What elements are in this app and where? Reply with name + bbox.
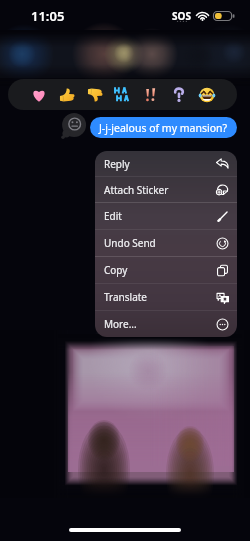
- staticText: Copy: [104, 263, 216, 277]
- button[interactable]: Love: [29, 85, 48, 104]
- button[interactable]: Reply: [95, 151, 237, 176]
- staticText: 11:05: [31, 7, 65, 25]
- button[interactable]: Translate: [95, 284, 237, 310]
- staticText: Reply: [104, 157, 216, 171]
- button[interactable]: Question: [169, 85, 188, 104]
- staticText: More...: [104, 317, 216, 331]
- button[interactable]: Laughing: [197, 85, 216, 104]
- staticText: Undo Send: [104, 236, 216, 250]
- button[interactable]: Attach Sticker: [95, 177, 237, 202]
- button[interactable]: Dislike: [85, 85, 104, 104]
- button[interactable]: Edit: [95, 203, 237, 229]
- button[interactable]: More...: [95, 311, 237, 337]
- staticText: J-j-jealous of my mansion?: [99, 121, 228, 135]
- button[interactable]: Add reaction: [60, 112, 90, 142]
- staticText: Edit: [104, 209, 216, 223]
- staticText: SOS: [172, 9, 191, 23]
- staticText: Attach Sticker: [104, 183, 216, 197]
- button[interactable]: Copy: [95, 257, 237, 283]
- button[interactable]: Emphasize: [141, 85, 160, 104]
- button[interactable]: Haha: [113, 85, 132, 104]
- staticText: Translate: [104, 290, 216, 304]
- button[interactable]: Like: [57, 85, 76, 104]
- button[interactable]: J-j-jealous of my mansion?: [90, 117, 237, 138]
- button[interactable]: Undo Send: [95, 230, 237, 256]
